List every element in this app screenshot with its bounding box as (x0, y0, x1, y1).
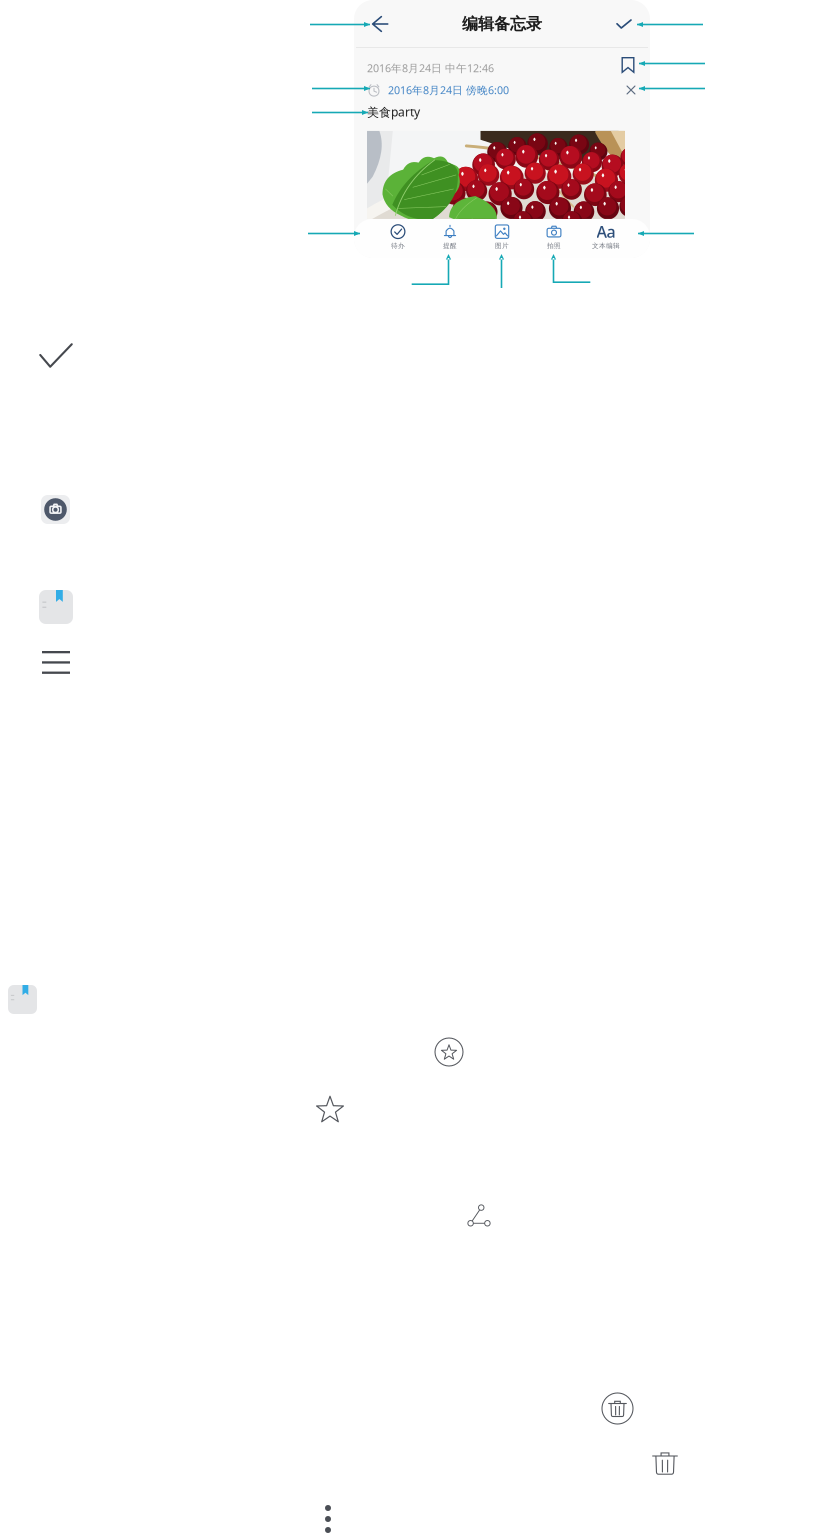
button[interactable]: Remove reminder (623, 82, 639, 98)
staticText: 文本编辑 (592, 242, 620, 250)
staticText: 待办 (391, 242, 405, 250)
staticText: 图片 (495, 242, 509, 250)
staticText: 美食party (367, 104, 420, 120)
staticText: 2016年8月24日 中午12:46 (367, 61, 494, 75)
button[interactable]: 待办 (372, 222, 424, 250)
button[interactable]: 拍照 (528, 222, 580, 250)
button[interactable]: Aa (580, 222, 632, 250)
staticText: 提醒 (443, 242, 457, 250)
staticText: Aa (596, 221, 615, 242)
staticText: 2016年8月24日 傍晚6:00 (388, 83, 509, 97)
button[interactable]: Done (606, 2, 642, 46)
button[interactable]: Bookmark (617, 59, 639, 77)
staticText: 编辑备忘录 (462, 14, 542, 34)
button[interactable]: 提醒 (424, 222, 476, 250)
staticText: 拍照 (547, 242, 561, 250)
button[interactable]: Back (362, 2, 398, 46)
button[interactable]: 图片 (476, 222, 528, 250)
